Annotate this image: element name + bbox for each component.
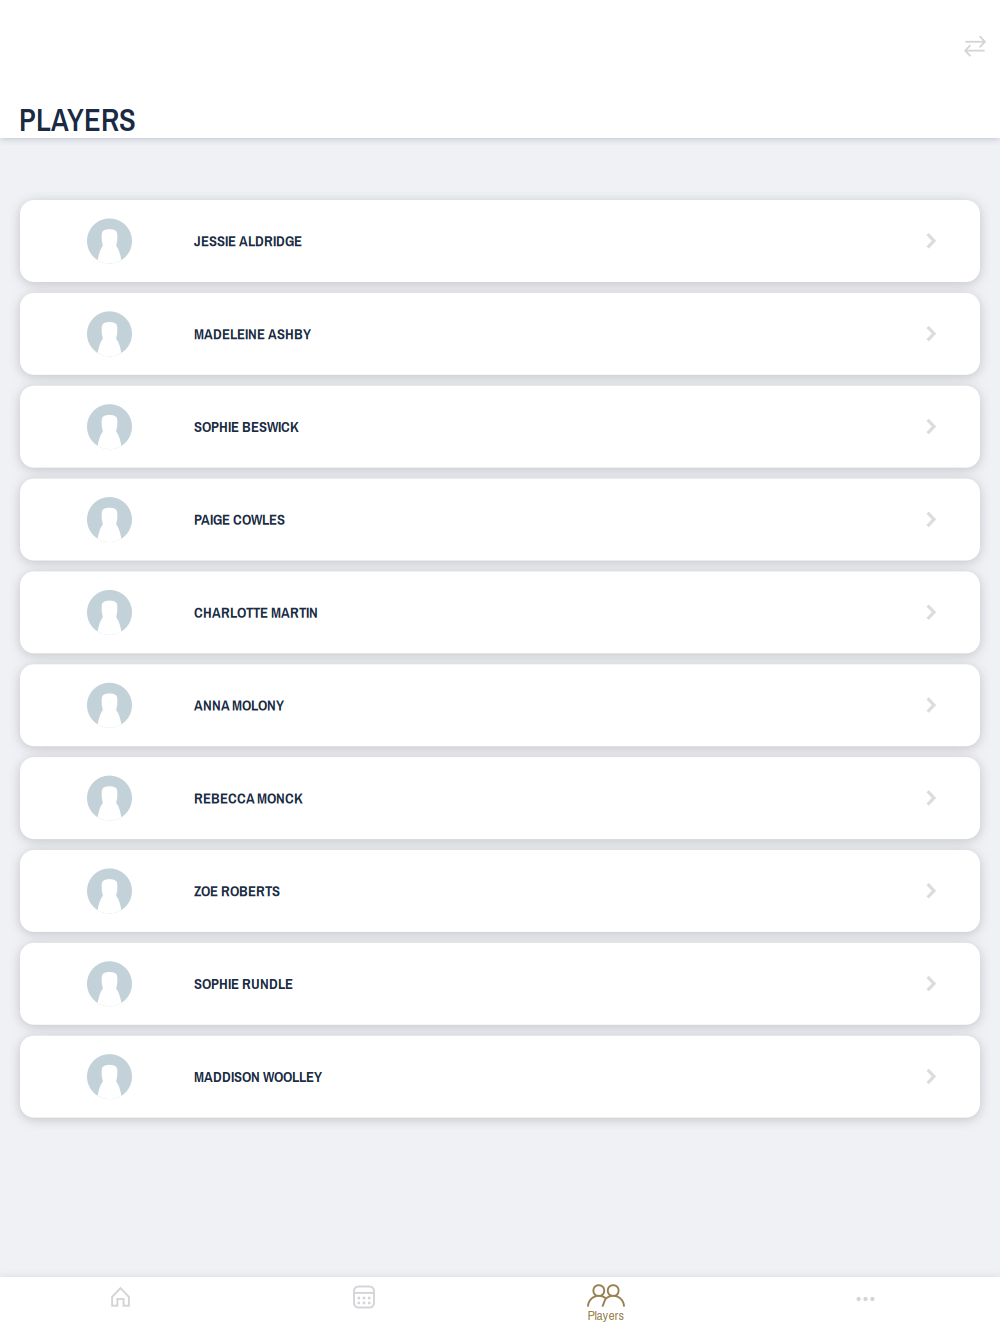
button[interactable]: REBECCA MONCK — [20, 757, 980, 839]
button[interactable]: Home — [0, 1277, 241, 1334]
button[interactable]: MADDISON WOOLLEY — [20, 1036, 980, 1118]
staticText: PAIGE COWLES — [194, 510, 285, 529]
button[interactable]: ANNA MOLONY — [20, 664, 980, 746]
staticText: MADDISON WOOLLEY — [194, 1067, 322, 1087]
button[interactable]: CHARLOTTE MARTIN — [20, 571, 980, 653]
staticText: ANNA MOLONY — [194, 695, 284, 715]
staticText: ZOE ROBERTS — [194, 881, 280, 901]
staticText: MADELEINE ASHBY — [194, 324, 311, 344]
button[interactable]: PAIGE COWLES — [20, 478, 980, 560]
staticText: SOPHIE BESWICK — [194, 417, 299, 437]
staticText: REBECCA MONCK — [194, 788, 303, 808]
button[interactable]: MADELEINE ASHBY — [20, 293, 980, 375]
staticText: PLAYERS — [19, 99, 136, 141]
button[interactable]: Schedule — [241, 1277, 487, 1334]
button[interactable]: ZOE ROBERTS — [20, 850, 980, 932]
button[interactable]: JESSIE ALDRIDGE — [20, 200, 980, 282]
button[interactable]: SOPHIE RUNDLE — [20, 943, 980, 1025]
staticText: JESSIE ALDRIDGE — [194, 231, 302, 251]
staticText: SOPHIE RUNDLE — [194, 974, 293, 994]
staticText: CHARLOTTE MARTIN — [194, 602, 318, 622]
button[interactable]: SOPHIE BESWICK — [20, 386, 980, 468]
button[interactable]: Players — [487, 1277, 725, 1334]
button[interactable]: Swap players — [954, 25, 996, 67]
staticText: Players — [587, 1306, 624, 1324]
